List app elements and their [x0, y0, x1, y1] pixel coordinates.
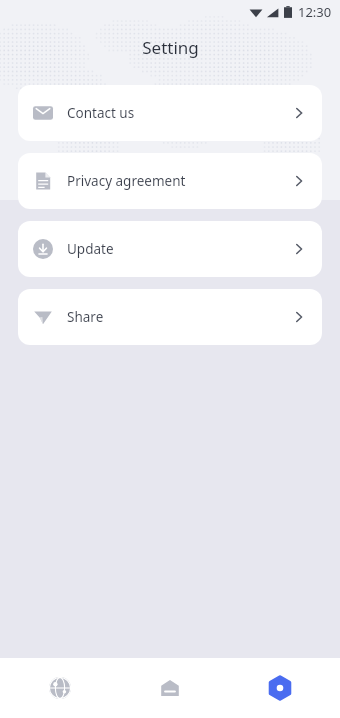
staticText: Privacy agreement	[67, 172, 186, 190]
staticText: Contact us	[67, 104, 135, 122]
button[interactable]: Home	[120, 658, 220, 718]
button[interactable]: Discover	[10, 658, 110, 718]
staticText: Share	[67, 308, 104, 326]
staticText: Update	[67, 240, 114, 258]
button[interactable]: Settings	[230, 658, 330, 718]
staticText: Setting	[142, 36, 199, 59]
button[interactable]: Share	[18, 289, 322, 345]
button[interactable]: Update	[18, 221, 322, 277]
button[interactable]: Contact us	[18, 85, 322, 141]
button[interactable]: Privacy agreement	[18, 153, 322, 209]
staticText: 12:30	[298, 3, 332, 21]
